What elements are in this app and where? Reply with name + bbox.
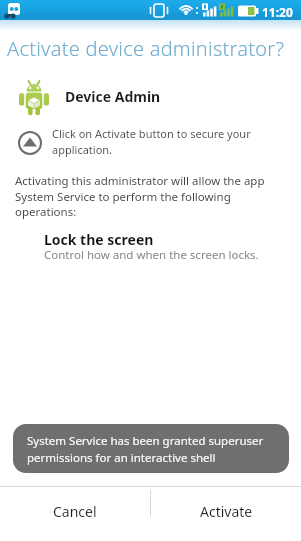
staticText: Activate [200,502,253,521]
staticText: Control how and when the screen locks. [44,247,259,263]
staticText: Activating this administrator will allow… [15,173,265,219]
staticText: Lock the screen [44,230,154,249]
staticText: Activate device administrator? [7,35,285,62]
button[interactable]: Cancel [0,487,150,541]
staticText: Click on Activate button to secure your … [52,126,251,157]
button[interactable]: Activate [151,487,301,541]
staticText: Device Admin [65,87,161,106]
staticText: Cancel [53,502,97,521]
staticText: 11:20 [262,4,293,20]
staticText: System Service has been granted superuse… [27,433,264,465]
